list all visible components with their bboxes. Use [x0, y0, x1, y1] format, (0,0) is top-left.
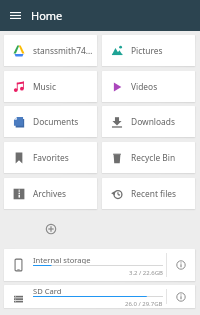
button[interactable]: Info: [167, 285, 195, 308]
staticText: Music: [33, 81, 57, 92]
button[interactable]: Add: [41, 219, 61, 239]
button[interactable]: Pictures: [102, 35, 195, 66]
button[interactable]: Menu: [0, 0, 31, 31]
button[interactable]: Archives: [4, 178, 97, 209]
button[interactable]: Favorites: [4, 142, 97, 173]
button[interactable]: Recycle Bin: [102, 142, 195, 173]
staticText: Recent files: [131, 188, 177, 199]
button[interactable]: SD Card: [4, 285, 195, 308]
button[interactable]: Documents: [4, 106, 97, 137]
button[interactable]: Videos: [102, 71, 195, 102]
staticText: stanssmith74@...: [33, 45, 94, 56]
button[interactable]: Info: [167, 249, 195, 281]
staticText: Internal storage: [33, 255, 91, 264]
button[interactable]: Recent files: [102, 178, 195, 209]
staticText: Downloads: [131, 116, 175, 127]
staticText: Recycle Bin: [131, 152, 176, 163]
staticText: Favorites: [33, 152, 69, 163]
staticText: Videos: [131, 81, 158, 92]
staticText: Home: [31, 8, 63, 23]
staticText: 3.2 / 22.6GB: [129, 269, 163, 277]
staticText: Pictures: [131, 45, 163, 56]
button[interactable]: stanssmith74@...: [4, 35, 97, 66]
staticText: SD Card: [33, 286, 62, 295]
button[interactable]: Music: [4, 71, 97, 102]
staticText: 26.0 / 29.7GB: [125, 300, 163, 308]
staticText: Archives: [33, 188, 67, 199]
button[interactable]: Downloads: [102, 106, 195, 137]
staticText: Documents: [33, 116, 79, 127]
button[interactable]: Internal storage: [4, 249, 195, 281]
